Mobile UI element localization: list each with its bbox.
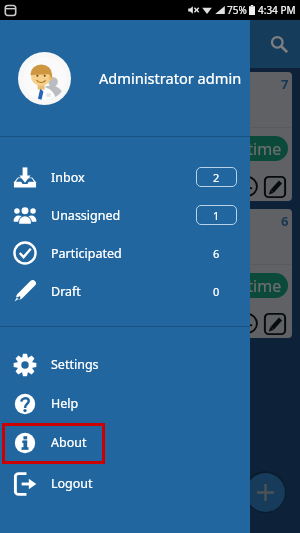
button[interactable]: Draft (0, 272, 250, 310)
button[interactable]: Settings (0, 345, 250, 384)
button[interactable]: Participated (0, 234, 250, 272)
staticText: Unassigned (51, 207, 121, 224)
button[interactable]: About (0, 423, 250, 462)
staticText: Draft (51, 283, 81, 300)
staticText: 2 (213, 170, 220, 185)
staticText: sometime (206, 138, 282, 160)
button[interactable]: Unassigned (0, 196, 250, 234)
staticText: 75% (227, 3, 247, 17)
staticText: Settings (51, 356, 99, 373)
button[interactable]: 6 (8, 209, 292, 338)
staticText: Logout (51, 475, 93, 492)
button[interactable]: Search (264, 29, 294, 59)
staticText: Inbox (51, 169, 85, 186)
staticText: 7 (281, 75, 289, 93)
staticText: 6 (281, 212, 289, 230)
staticText: Help (51, 395, 79, 412)
button[interactable]: Add (246, 473, 285, 512)
staticText: Participated (51, 245, 122, 262)
button[interactable]: Help (0, 384, 250, 423)
staticText: sometime (206, 275, 282, 297)
button[interactable]: Inbox (0, 158, 250, 196)
button[interactable]: Logout (0, 464, 250, 503)
staticText: Administrator admin (99, 68, 242, 88)
staticText: 4:34 PM (258, 3, 296, 17)
staticText: 1 (213, 208, 220, 223)
button[interactable]: 7 (8, 72, 292, 201)
staticText: 0 (213, 284, 220, 299)
staticText: About (51, 434, 87, 451)
staticText: 6 (213, 246, 220, 261)
